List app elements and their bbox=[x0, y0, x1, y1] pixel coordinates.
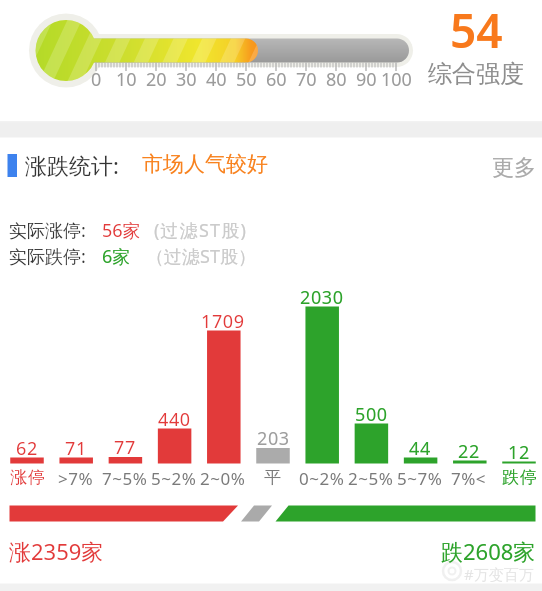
staticText: 2~5% bbox=[348, 467, 394, 490]
staticText: 跌2608家 bbox=[441, 536, 536, 566]
staticText: 56家 bbox=[102, 218, 141, 243]
staticText: 涨停 bbox=[10, 467, 45, 488]
staticText: 5~7% bbox=[397, 467, 443, 490]
staticText: 500 bbox=[355, 402, 388, 427]
staticText: 70 bbox=[296, 67, 317, 92]
staticText: >7% bbox=[58, 467, 94, 490]
staticText: 40 bbox=[206, 67, 227, 92]
staticText: 市场人气较好 bbox=[142, 151, 268, 177]
staticText: 2~0% bbox=[200, 467, 246, 490]
staticText: 2030 bbox=[300, 285, 344, 310]
staticText: 平 bbox=[264, 467, 282, 488]
staticText: 0 bbox=[91, 67, 102, 92]
staticText: 77 bbox=[114, 435, 136, 460]
staticText: 更多 bbox=[492, 154, 536, 182]
staticText: 20 bbox=[146, 67, 167, 92]
staticText: #万变百万 bbox=[464, 564, 534, 584]
staticText: 6家 bbox=[102, 244, 131, 269]
staticText: 100 bbox=[381, 67, 412, 92]
staticText: 90 bbox=[356, 67, 377, 92]
staticText: 7%< bbox=[451, 467, 487, 490]
staticText: 44 bbox=[409, 436, 431, 461]
staticText: 涨2359家 bbox=[9, 536, 104, 566]
staticText: 440 bbox=[158, 407, 191, 432]
staticText: 1709 bbox=[201, 309, 245, 334]
staticText: 54 bbox=[450, 0, 503, 62]
staticText: 203 bbox=[257, 426, 290, 451]
staticText: 实际涨停: bbox=[9, 218, 86, 243]
staticText: 10 bbox=[116, 67, 137, 92]
staticText: 22 bbox=[458, 439, 480, 464]
staticText: 5~2% bbox=[151, 467, 197, 490]
button[interactable]: 更多 bbox=[436, 150, 536, 186]
staticText: 60 bbox=[266, 67, 287, 92]
staticText: 实际跌停: bbox=[9, 244, 86, 269]
staticText: 50 bbox=[236, 67, 257, 92]
staticText: 0~2% bbox=[299, 467, 345, 490]
staticText: 30 bbox=[176, 67, 197, 92]
staticText: 80 bbox=[326, 67, 347, 92]
staticText: （过滤ST股） bbox=[146, 244, 256, 269]
staticText: 12 bbox=[508, 440, 530, 465]
staticText: 7~5% bbox=[102, 467, 148, 490]
staticText: 跌停 bbox=[502, 467, 537, 488]
staticText: 涨跌统计: bbox=[25, 150, 119, 180]
staticText: (过滤ST股) bbox=[154, 218, 248, 243]
staticText: 71 bbox=[65, 436, 87, 461]
staticText: 62 bbox=[16, 436, 38, 461]
staticText: 综合强度 bbox=[428, 59, 524, 89]
